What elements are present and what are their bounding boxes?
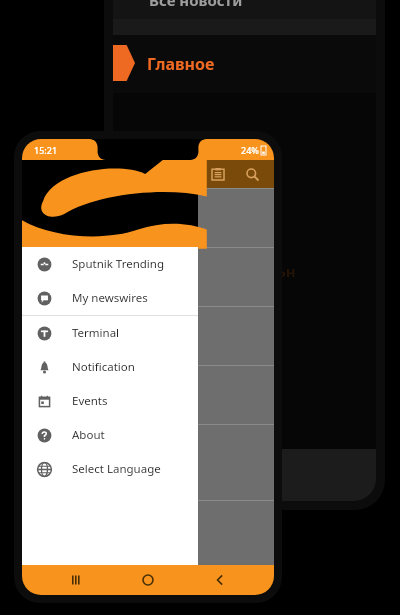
button[interactable]: Sputnik Trending xyxy=(22,247,198,281)
staticText: Allegations Are True – xyxy=(36,218,149,233)
button[interactable]: Notification xyxy=(22,350,198,384)
button[interactable]: ONLY VACCINATED xyxy=(22,425,274,500)
staticText: Select Language xyxy=(72,461,161,477)
staticText: My newswires xyxy=(72,290,148,306)
button[interactable]: Select Language xyxy=(22,452,198,486)
button[interactable]: My newswires xyxy=(22,281,198,315)
staticText: ONLY VACCINATED xyxy=(36,437,133,452)
staticText: Notification xyxy=(72,359,135,375)
button[interactable]: Lawsuit Against xyxy=(22,366,274,424)
button[interactable]: Terminal xyxy=(22,316,198,350)
staticText: WILL GET VACATIONS xyxy=(36,454,147,469)
staticText: 24% xyxy=(241,144,259,156)
button[interactable]: Back xyxy=(203,565,237,595)
staticText: Все новости xyxy=(149,0,243,10)
staticText: Terminal xyxy=(72,325,120,341)
button[interactable]: Russia Developing xyxy=(22,248,274,306)
staticText: Events xyxy=(72,393,108,409)
staticText: Restrictions on xyxy=(36,319,113,334)
button[interactable]: Biden Should Resign If xyxy=(22,189,274,247)
button[interactable]: Newswires xyxy=(206,162,230,186)
staticText: SAYS TOURISM xyxy=(36,471,113,486)
staticText: About xyxy=(72,427,105,443)
button[interactable]: NEW PROCEDURE xyxy=(22,501,274,542)
button[interactable]: Home xyxy=(131,565,165,595)
staticText: Главное xyxy=(147,53,215,75)
staticText: Flights Starting May 10 - xyxy=(36,336,161,351)
button[interactable]: Recent apps xyxy=(60,565,94,595)
button[interactable]: About xyxy=(22,418,198,452)
button[interactable]: Restrictions on xyxy=(22,307,274,365)
staticText: Biden Should Resign If xyxy=(36,201,153,216)
staticText: Russia Developing xyxy=(36,260,131,275)
staticText: For Violation of Contract - xyxy=(36,395,168,410)
button[interactable]: Events xyxy=(22,384,198,418)
staticText: Sputnik Trending xyxy=(72,256,164,272)
button[interactable]: Search xyxy=(240,162,264,186)
staticText: лее стабильн xyxy=(193,261,296,281)
staticText: 15:21 xyxy=(34,144,58,156)
